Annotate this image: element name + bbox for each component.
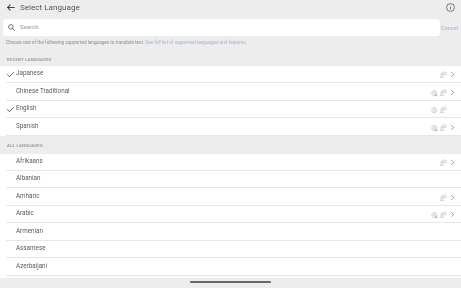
button[interactable]: English — [0, 101, 461, 118]
button[interactable]: Assamese — [0, 241, 461, 258]
button[interactable]: Cancel — [441, 25, 459, 32]
staticText: ALL LANGUAGES — [7, 143, 43, 148]
staticText: Arabic — [16, 209, 34, 216]
staticText: Japanese — [16, 69, 44, 76]
staticText: Chinese Traditional — [16, 87, 70, 94]
staticText: Afrikaans — [16, 157, 43, 164]
button[interactable] — [3, 19, 440, 36]
button[interactable]: Albanian — [0, 171, 461, 188]
button[interactable]: Japanese — [0, 66, 461, 83]
staticText: Armenian — [16, 227, 44, 234]
staticText: English — [16, 104, 37, 111]
button[interactable]: Spanish — [0, 119, 461, 136]
staticText: Amharic — [16, 192, 40, 199]
staticText: Assamese — [16, 244, 46, 251]
staticText: RECENT LANGUAGES — [7, 57, 52, 62]
staticText: Search — [20, 23, 39, 30]
staticText: Azerbaijani — [16, 262, 48, 269]
button[interactable]: Info — [446, 3, 455, 12]
button[interactable]: Back — [6, 3, 15, 12]
button[interactable]: Azerbaijani — [0, 259, 461, 276]
staticText: Choose one of the following supported la… — [6, 40, 247, 45]
staticText: Select Language — [20, 2, 80, 11]
button[interactable]: Armenian — [0, 224, 461, 241]
staticText: Spanish — [16, 122, 39, 129]
staticText: Albanian — [16, 174, 41, 181]
button[interactable]: Chinese Traditional — [0, 84, 461, 101]
button[interactable]: Amharic — [0, 189, 461, 206]
button[interactable]: Arabic — [0, 206, 461, 223]
button[interactable]: Afrikaans — [0, 154, 461, 171]
